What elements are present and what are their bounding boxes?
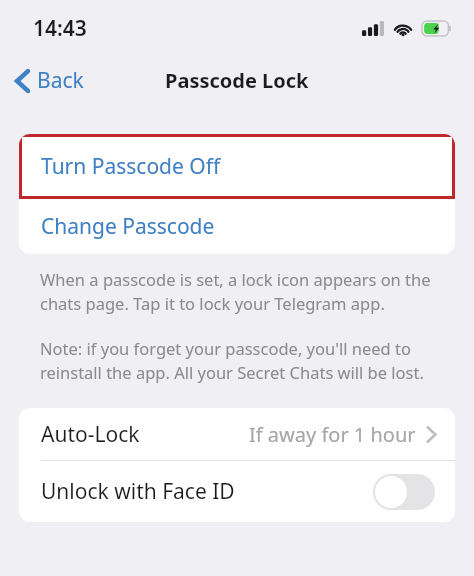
staticText: If away for 1 hour — [249, 421, 416, 448]
staticText: Passcode Lock — [165, 67, 309, 94]
button[interactable]: Change Passcode — [19, 199, 455, 254]
button[interactable]: Back — [0, 60, 94, 101]
staticText: Change Passcode — [41, 212, 215, 241]
staticText: Note: if you forget your passcode, you'l… — [40, 337, 434, 384]
staticText: Back — [37, 66, 84, 95]
button[interactable]: Unlock with Face ID — [19, 461, 455, 522]
button[interactable]: Auto-Lock — [19, 408, 455, 460]
button[interactable]: Unlock with Face ID toggle — [373, 474, 435, 510]
staticText: Auto-Lock — [41, 420, 140, 449]
button[interactable]: Turn Passcode Off — [19, 134, 455, 199]
staticText: When a passcode is set, a lock icon appe… — [40, 268, 434, 315]
staticText: 14:43 — [33, 14, 87, 43]
staticText: Unlock with Face ID — [41, 477, 235, 506]
staticText: Turn Passcode Off — [41, 152, 221, 181]
